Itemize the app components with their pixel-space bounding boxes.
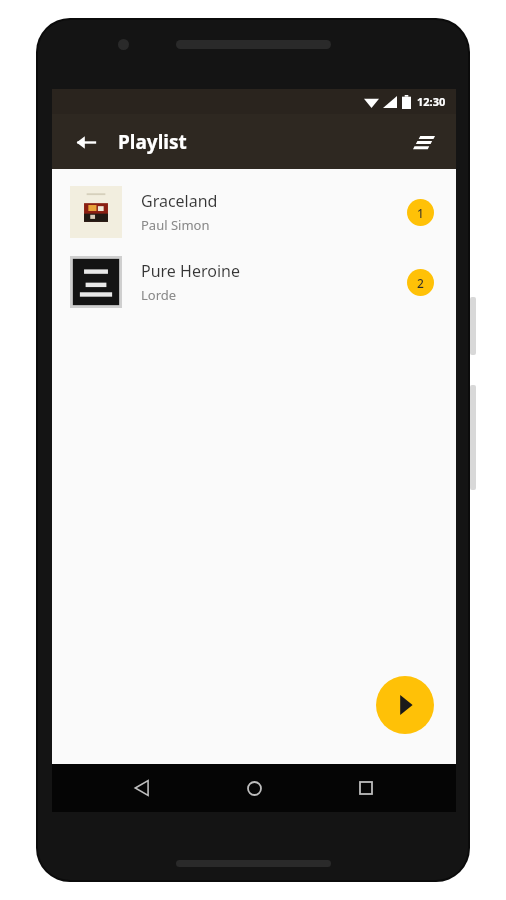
staticText: Playlist bbox=[118, 129, 187, 155]
staticText: Graceland bbox=[141, 190, 218, 212]
staticText: 2 bbox=[417, 275, 424, 291]
button[interactable]: Sort bbox=[402, 120, 446, 164]
button[interactable]: Pure Heroine bbox=[52, 247, 456, 317]
button[interactable]: Play bbox=[376, 676, 434, 734]
button[interactable]: Back bbox=[120, 766, 164, 810]
button[interactable]: Home bbox=[232, 766, 276, 810]
staticText: 1 bbox=[417, 205, 424, 221]
button[interactable]: Graceland bbox=[52, 177, 456, 247]
staticText: Lorde bbox=[141, 286, 177, 304]
staticText: Pure Heroine bbox=[141, 260, 240, 282]
staticText: 12:30 bbox=[417, 94, 446, 109]
staticText: Paul Simon bbox=[141, 216, 210, 234]
button[interactable]: Back bbox=[64, 120, 108, 164]
button[interactable]: Recent apps bbox=[344, 766, 388, 810]
